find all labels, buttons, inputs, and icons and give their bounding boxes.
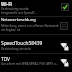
button[interactable]: Wi-Fi xyxy=(0,0,72,17)
button[interactable]: Wi-Fi aktivieren xyxy=(61,3,69,11)
staticText: SpeedTouch58439 xyxy=(1,40,43,47)
staticText: Verbindung wurde hergestellt mit SpeedTo… xyxy=(1,7,38,15)
button[interactable]: TDV xyxy=(0,54,72,72)
button[interactable]: Netzwerkmeldung aktivieren xyxy=(60,22,68,30)
button[interactable]: Netzwerkmeldung xyxy=(0,17,72,34)
staticText: Netzwerkmeldung xyxy=(1,17,36,22)
button[interactable]: SpeedTouch58439 xyxy=(0,35,72,53)
staticText: TDV xyxy=(1,56,10,63)
staticText: Wi-Fi xyxy=(1,1,12,7)
staticText: Verbindung besteht xyxy=(1,47,31,51)
staticText: Mitteilung, wenn ein offenes Netzwerk ve… xyxy=(1,24,59,32)
staticText: Gesichert mit WPA/WPA2 PSK (WPS verfügba… xyxy=(1,62,59,66)
